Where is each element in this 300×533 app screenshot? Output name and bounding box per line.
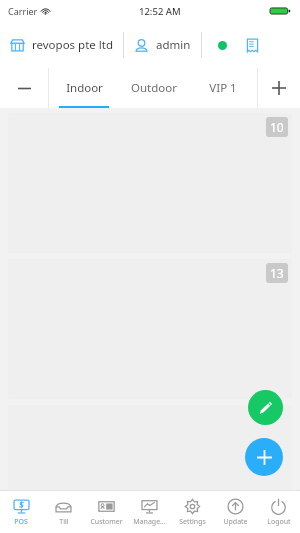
staticText: Indoor xyxy=(66,80,103,96)
staticText: Update xyxy=(223,517,248,527)
staticText: POS xyxy=(14,517,28,527)
staticText: revopos pte ltd xyxy=(32,37,113,53)
button[interactable]: 10 xyxy=(8,113,292,253)
button[interactable]: Till xyxy=(42,491,85,533)
button[interactable]: admin xyxy=(134,37,191,53)
staticText: Settings xyxy=(179,517,206,527)
staticText: Outdoor xyxy=(131,80,177,96)
button[interactable] xyxy=(8,405,292,490)
staticText: 13 xyxy=(270,265,284,281)
button[interactable]: POS xyxy=(0,491,42,533)
button[interactable]: Collapse xyxy=(0,68,48,108)
button[interactable]: Add table xyxy=(245,438,283,476)
button[interactable]: Logout xyxy=(257,491,300,533)
staticText: Carrier xyxy=(8,5,38,17)
staticText: admin xyxy=(156,37,191,53)
button[interactable]: Receipts xyxy=(242,35,262,55)
button[interactable]: Manage… xyxy=(128,491,171,533)
button[interactable]: Indoor xyxy=(49,68,119,108)
staticText: Logout xyxy=(267,517,291,527)
button[interactable]: Add group xyxy=(258,68,300,108)
staticText: Manage… xyxy=(133,517,166,527)
button[interactable]: Edit xyxy=(248,390,283,425)
button[interactable]: Outdoor xyxy=(119,68,188,108)
button[interactable]: VIP 1 xyxy=(188,68,257,108)
staticText: Till xyxy=(59,517,69,527)
staticText: Customer xyxy=(90,517,123,527)
button[interactable]: 13 xyxy=(8,259,292,399)
staticText: VIP 1 xyxy=(209,80,237,96)
staticText: 10 xyxy=(270,119,284,135)
button[interactable]: Update xyxy=(214,491,257,533)
button[interactable]: Settings xyxy=(171,491,214,533)
staticText: 12:52 AM xyxy=(139,5,181,18)
button[interactable]: Online status xyxy=(214,37,230,53)
button[interactable]: revopos pte ltd xyxy=(10,37,113,53)
button[interactable]: Customer xyxy=(85,491,128,533)
